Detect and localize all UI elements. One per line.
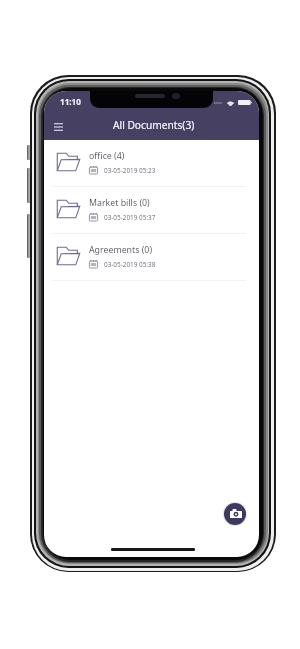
staticText: Agreements (0) bbox=[89, 244, 153, 256]
button[interactable]: office (4) bbox=[44, 140, 259, 186]
button[interactable]: Market bills (0) bbox=[44, 187, 259, 233]
button[interactable]: Open navigation menu bbox=[45, 115, 71, 138]
staticText: 03-05-2019 05:37 bbox=[104, 213, 156, 222]
staticText: Market bills (0) bbox=[89, 197, 150, 209]
staticText: 11:10 bbox=[60, 96, 81, 107]
staticText: All Documents(3) bbox=[113, 118, 195, 132]
staticText: office (4) bbox=[89, 150, 125, 162]
button[interactable]: Scan document with camera bbox=[224, 503, 246, 525]
button[interactable]: Agreements (0) bbox=[44, 234, 259, 280]
staticText: 03-05-2019 05:23 bbox=[104, 166, 156, 175]
staticText: 03-05-2019 05:38 bbox=[104, 260, 156, 269]
